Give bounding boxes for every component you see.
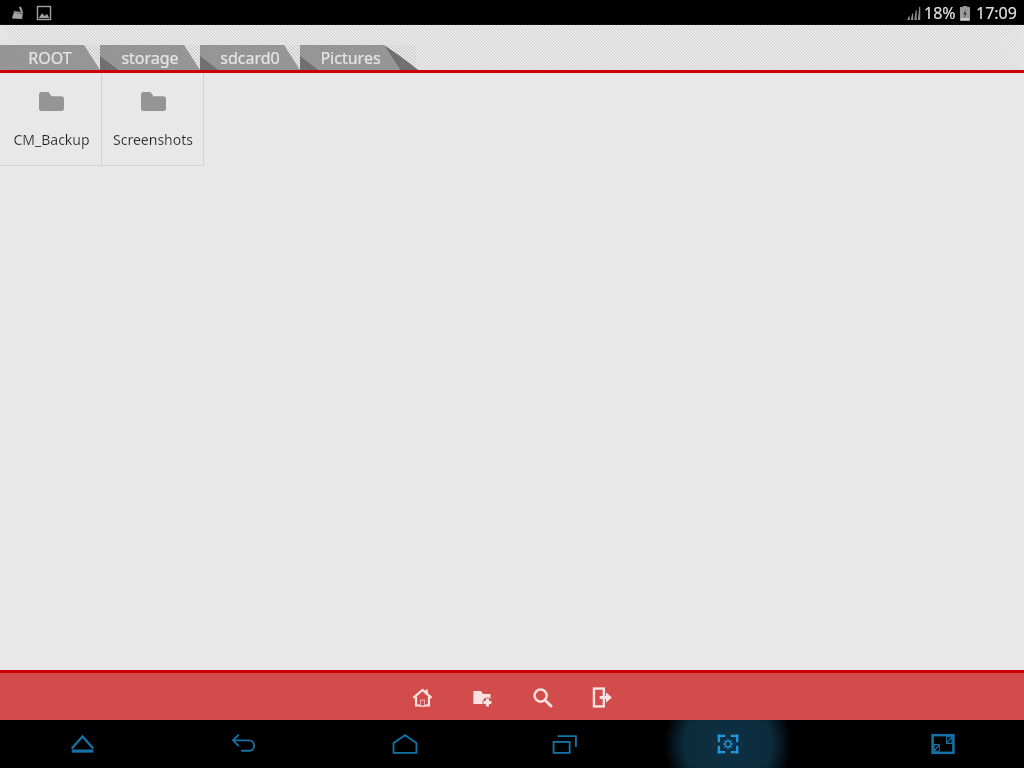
button[interactable]: Eject [62, 724, 102, 764]
button[interactable]: Back [224, 724, 264, 764]
staticText: ROOT [28, 47, 72, 69]
staticText: Screenshots [113, 130, 193, 149]
button[interactable]: Recent apps [545, 724, 585, 764]
staticText: 18% [924, 2, 956, 24]
staticText: storage [121, 47, 179, 69]
button[interactable]: Home [402, 677, 442, 717]
button[interactable]: Home [385, 724, 425, 764]
button[interactable]: Pictures [300, 25, 400, 73]
staticText: 17:09 [976, 2, 1017, 24]
staticText: Pictures [320, 47, 381, 69]
button[interactable]: Screenshots [102, 73, 204, 166]
button[interactable]: CM_Backup [0, 73, 102, 166]
button[interactable]: New folder [462, 677, 502, 717]
button[interactable]: ROOT [0, 25, 100, 73]
button[interactable]: Search [522, 677, 562, 717]
button[interactable]: Resize window [923, 724, 963, 764]
button[interactable]: Screenshot [708, 724, 748, 764]
staticText: sdcard0 [220, 47, 280, 69]
button[interactable]: sdcard0 [200, 25, 300, 73]
staticText: CM_Backup [13, 130, 90, 149]
button[interactable]: storage [100, 25, 200, 73]
button[interactable]: Exit [582, 677, 622, 717]
